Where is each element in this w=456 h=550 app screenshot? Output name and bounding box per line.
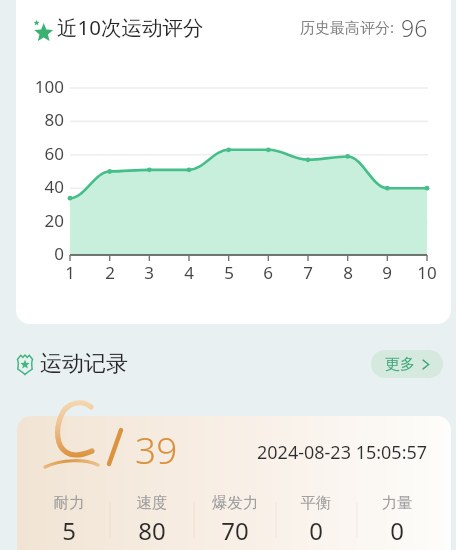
staticText: 耐力 [29,493,109,513]
other: Records [16,354,34,375]
staticText: 速度 [112,493,192,513]
staticText: 3 [132,261,166,284]
staticText: 5 [29,514,109,547]
staticText: 更多 [385,355,415,374]
other: Score [25,13,51,41]
staticText: 2024-08-23 15:05:57 [257,440,428,465]
staticText: 60 [28,142,64,165]
staticText: 39 [135,424,178,474]
staticText: 70 [195,514,275,547]
staticText: 4 [172,261,206,284]
staticText: 9 [370,261,404,284]
button[interactable]: 更多 [371,350,443,378]
staticText: 历史最高评分: [300,17,395,37]
button[interactable]: 耐力 [17,416,451,550]
staticText: 20 [28,209,64,232]
staticText: 2 [93,261,127,284]
staticText: 0 [357,514,437,547]
staticText: 0 [276,514,356,547]
staticText: 近10次运动评分 [57,13,204,41]
staticText: 6 [251,261,285,284]
staticText: 100 [28,75,64,98]
staticText: 80 [112,514,192,547]
staticText: 力量 [357,493,437,513]
staticText: 7 [291,261,325,284]
staticText: 爆发力 [195,493,275,513]
staticText: 80 [28,108,64,131]
staticText: 运动记录 [40,350,128,378]
staticText: 40 [28,175,64,198]
staticText: 1 [53,261,87,284]
staticText: 96 [401,12,428,42]
staticText: 平衡 [276,493,356,513]
staticText: 8 [331,261,365,284]
staticText: 10 [410,261,444,284]
staticText: 0 [28,242,64,265]
staticText: 5 [212,261,246,284]
